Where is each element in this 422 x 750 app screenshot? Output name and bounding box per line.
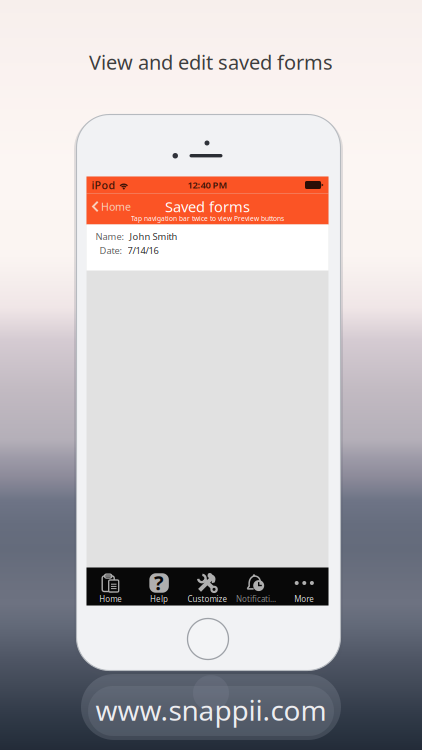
staticText: iPod: [91, 178, 115, 192]
staticText: Saved forms: [165, 197, 250, 216]
button[interactable]: Home: [86, 197, 146, 215]
staticText: www.snappii.com: [95, 691, 326, 729]
staticText: Notificati...: [236, 594, 276, 604]
button[interactable]: Notificati...: [232, 567, 280, 605]
staticText: 12:40 PM: [187, 179, 227, 191]
staticText: John Smith: [129, 230, 177, 243]
staticText: More: [294, 594, 314, 604]
staticText: Home: [101, 199, 131, 214]
staticText: Date:: [99, 244, 122, 257]
button[interactable]: ?: [135, 567, 183, 605]
staticText: Name:: [95, 230, 124, 243]
staticText: Customize: [187, 594, 227, 604]
staticText: Help: [150, 594, 168, 604]
staticText: Home: [99, 594, 122, 604]
staticText: 7/14/16: [127, 244, 158, 257]
button[interactable]: Customize: [183, 567, 232, 605]
staticText: Tap navigation bar twice to view Preview…: [131, 214, 284, 223]
button[interactable]: Home: [86, 567, 135, 605]
button[interactable]: More: [280, 567, 328, 605]
staticText: View and edit saved forms: [89, 49, 333, 75]
staticText: ?: [154, 569, 164, 596]
